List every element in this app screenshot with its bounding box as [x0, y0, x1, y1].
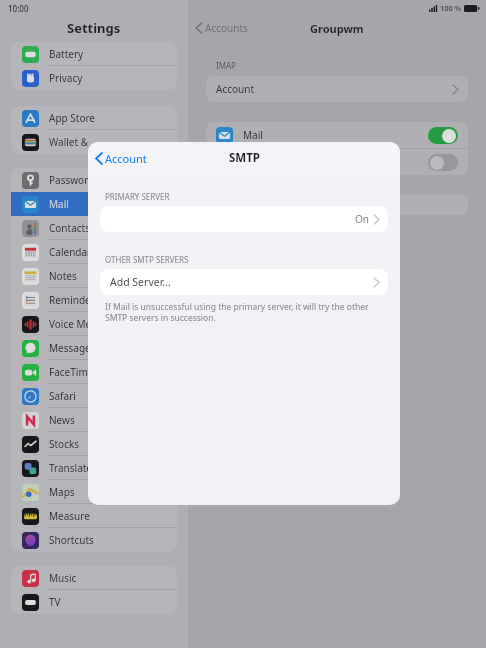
- button[interactable]: Account: [206, 76, 468, 102]
- button[interactable]: Privacy: [11, 66, 177, 90]
- staticText: Voice Memos: [49, 317, 112, 331]
- button[interactable]: Voice Memos: [11, 312, 177, 336]
- staticText: Account: [105, 151, 147, 166]
- button[interactable]: Accounts: [196, 21, 248, 35]
- staticText: Calendar: [49, 245, 92, 259]
- staticText: On: [355, 212, 369, 226]
- staticText: Stocks: [49, 437, 80, 451]
- staticText: Notes: [49, 269, 77, 283]
- staticText: Safari: [49, 389, 76, 403]
- button[interactable]: Maps: [11, 480, 177, 504]
- staticText: If Mail is unsuccessful using the primar…: [105, 301, 383, 323]
- staticText: Add Server...: [110, 275, 171, 289]
- button[interactable]: Mail: [216, 122, 468, 148]
- button[interactable]: Measure: [11, 504, 177, 528]
- staticText: Music: [49, 571, 77, 585]
- staticText: OTHER SMTP SERVERS: [105, 254, 189, 265]
- staticText: Accounts: [205, 21, 248, 35]
- button[interactable]: Notes: [11, 264, 177, 288]
- staticText: Mail: [243, 128, 263, 142]
- staticText: 100 %: [440, 3, 462, 13]
- button[interactable]: Music: [11, 566, 177, 590]
- staticText: Wallet &: [49, 135, 89, 149]
- staticText: Maps: [49, 485, 75, 499]
- staticText: PRIMARY SERVER: [105, 191, 170, 202]
- button[interactable]: Add Server...: [100, 269, 388, 295]
- staticText: Measure: [49, 509, 90, 523]
- button[interactable]: Toggle off: [216, 149, 468, 175]
- button[interactable]: Translate: [11, 456, 177, 480]
- staticText: 10:00: [8, 3, 29, 14]
- button[interactable]: Mail: [11, 192, 177, 216]
- staticText: Passwords: [49, 173, 100, 187]
- staticText: Translate: [49, 461, 93, 475]
- button[interactable]: Messages: [11, 336, 177, 360]
- button[interactable]: Contacts: [11, 216, 177, 240]
- button[interactable]: Battery: [11, 42, 177, 66]
- staticText: Battery: [49, 47, 84, 61]
- button[interactable]: Passwords: [11, 168, 177, 192]
- button[interactable]: TV: [11, 590, 177, 614]
- button[interactable]: On: [100, 206, 388, 232]
- staticText: App Store: [49, 111, 96, 125]
- staticText: Messages: [49, 341, 96, 355]
- button[interactable]: Stocks: [11, 432, 177, 456]
- staticText: Settings: [67, 19, 121, 37]
- staticText: TV: [49, 595, 61, 609]
- button[interactable]: Wallet &: [11, 130, 177, 154]
- staticText: News: [49, 413, 75, 427]
- staticText: Shortcuts: [49, 533, 94, 547]
- staticText: SMTP: [229, 150, 260, 166]
- button[interactable]: Toggle off: [428, 154, 458, 171]
- button[interactable]: FaceTime: [11, 360, 177, 384]
- staticText: Mail: [49, 197, 69, 211]
- button[interactable]: Calendar: [11, 240, 177, 264]
- button[interactable]: Safari: [11, 384, 177, 408]
- staticText: Contacts: [49, 221, 90, 235]
- button[interactable]: App Store: [11, 106, 177, 130]
- button[interactable]: Shortcuts: [11, 528, 177, 552]
- staticText: Privacy: [49, 71, 83, 85]
- button[interactable]: Toggle on: [428, 127, 458, 144]
- staticText: IMAP: [216, 60, 236, 71]
- button[interactable]: News: [11, 408, 177, 432]
- staticText: Groupwm: [310, 21, 364, 36]
- button[interactable]: Account: [96, 151, 147, 166]
- staticText: Account: [216, 82, 255, 96]
- staticText: Reminders: [49, 293, 100, 307]
- staticText: FaceTime: [49, 365, 94, 379]
- button[interactable]: Reminders: [11, 288, 177, 312]
